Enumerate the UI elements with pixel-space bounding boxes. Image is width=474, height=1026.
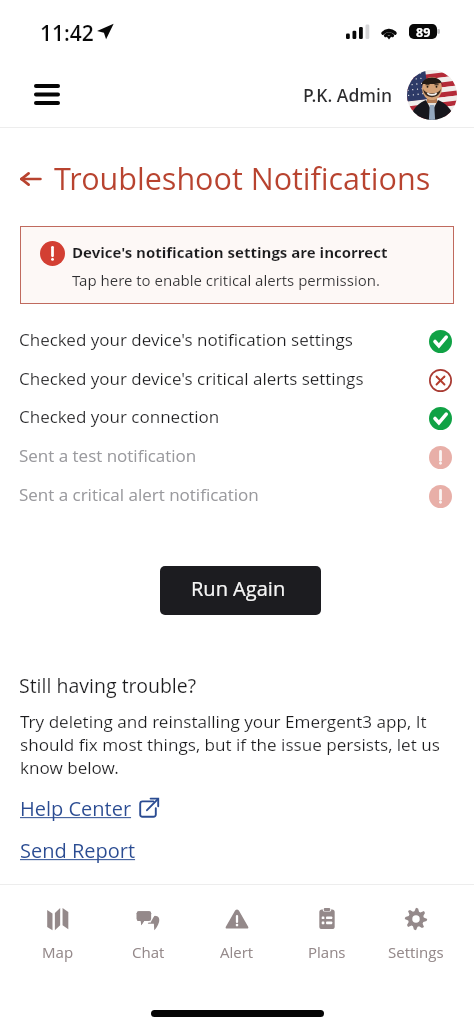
button[interactable]: Send Report	[20, 837, 136, 864]
button[interactable]: Alert	[193, 898, 281, 968]
button[interactable]: Chat	[104, 898, 192, 968]
staticText: Still having trouble?	[19, 672, 197, 699]
button[interactable]: P.K. Admin	[303, 69, 457, 121]
staticText: Troubleshoot Notifications	[54, 157, 431, 199]
button[interactable]: Checked your connection	[0, 399, 474, 437]
staticText: Sent a test notification	[19, 444, 197, 467]
button[interactable]: Troubleshoot Notifications	[20, 157, 431, 201]
button[interactable]: Plans	[283, 898, 371, 968]
staticText: Alert	[220, 942, 254, 962]
button[interactable]: Sent a test notification	[0, 438, 474, 476]
staticText: Settings	[388, 942, 444, 962]
staticText: Chat	[132, 942, 165, 962]
staticText: Checked your device's notification setti…	[19, 328, 353, 351]
button[interactable]: Run Again	[160, 566, 321, 615]
button[interactable]: Device's notification settings are incor…	[20, 226, 454, 304]
staticText: Tap here to enable critical alerts permi…	[72, 270, 380, 290]
staticText: Device's notification settings are incor…	[72, 242, 388, 262]
staticText: Plans	[308, 942, 346, 962]
staticText: Send Report	[20, 837, 136, 864]
button[interactable]: Menu	[25, 74, 68, 114]
button[interactable]: Checked your device's critical alerts se…	[0, 361, 474, 399]
staticText: Run Again	[191, 575, 286, 602]
button[interactable]: Map	[14, 898, 102, 968]
staticText: 11:42	[40, 19, 94, 48]
staticText: Help Center	[20, 795, 132, 822]
staticText: Checked your connection	[19, 405, 220, 428]
staticText: P.K. Admin	[303, 83, 393, 107]
staticText: Sent a critical alert notification	[19, 483, 259, 506]
staticText: Map	[42, 942, 74, 962]
button[interactable]: Settings	[372, 898, 460, 968]
button[interactable]: Help Center	[20, 792, 159, 824]
staticText: 89	[416, 24, 431, 39]
staticText: Checked your device's critical alerts se…	[19, 367, 364, 390]
staticText: Try deleting and reinstalling your Emerg…	[20, 710, 456, 779]
button[interactable]: Sent a critical alert notification	[0, 477, 474, 515]
button[interactable]: Checked your device's notification setti…	[0, 322, 474, 360]
